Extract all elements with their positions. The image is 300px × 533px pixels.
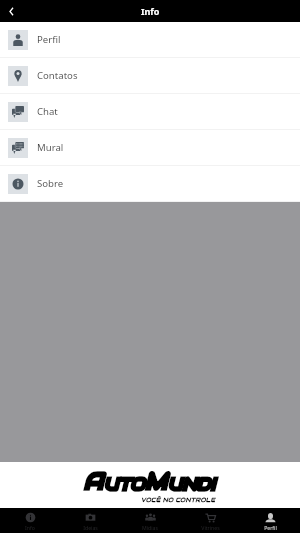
button[interactable]: Chat	[0, 94, 300, 130]
staticText: Contatos	[37, 69, 78, 82]
staticText: Perfil	[264, 524, 277, 531]
staticText: Perfil	[37, 33, 61, 46]
button[interactable]: Vitrines	[180, 508, 240, 533]
staticText: Ideias	[83, 524, 98, 531]
button[interactable]: Mídias	[120, 508, 180, 533]
staticText: Chat	[37, 105, 58, 118]
button[interactable]: Sobre	[0, 166, 300, 202]
staticText: A	[84, 466, 104, 495]
staticText: A	[84, 466, 104, 495]
staticText: UTO	[104, 473, 145, 495]
button[interactable]: Back	[0, 0, 22, 22]
staticText: Mídias	[142, 524, 158, 531]
staticText: UTO	[104, 473, 145, 495]
staticText: M	[145, 466, 168, 495]
staticText: VOCÊ NO CONTROLE	[141, 496, 216, 504]
button[interactable]: Perfil	[240, 508, 300, 533]
button[interactable]: Ideias	[60, 508, 120, 533]
staticText: Info	[141, 5, 160, 17]
button[interactable]: Info	[0, 508, 60, 533]
staticText: Vitrines	[201, 524, 220, 531]
button[interactable]: Mural	[0, 130, 300, 166]
staticText: M	[145, 466, 168, 495]
button[interactable]: Contatos	[0, 58, 300, 94]
staticText: Sobre	[37, 177, 64, 190]
staticText: UNDI	[168, 473, 216, 495]
staticText: Info	[25, 524, 35, 531]
staticText: UNDI	[168, 473, 216, 495]
staticText: Mural	[37, 141, 64, 154]
button[interactable]: Perfil	[0, 22, 300, 58]
